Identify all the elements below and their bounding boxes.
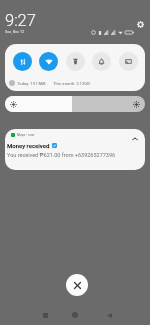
button[interactable]: Collapse notification xyxy=(130,134,140,144)
button[interactable]: Settings xyxy=(133,17,147,31)
button[interactable]: Maya • now xyxy=(5,129,145,170)
staticText: You received ₱621.00 from +639265277396 xyxy=(7,152,116,158)
staticText: This month: 3.12GB xyxy=(53,81,90,86)
staticText: Today: 151 MiB xyxy=(17,81,46,86)
button[interactable]: Screen cast xyxy=(119,52,138,71)
button[interactable]: Recents xyxy=(38,308,52,322)
button[interactable]: Flashlight xyxy=(66,52,85,71)
button[interactable]: Clear all notifications xyxy=(66,274,88,296)
button[interactable]: Do not disturb xyxy=(92,52,111,71)
button[interactable]: Mobile data xyxy=(13,52,32,71)
button[interactable]: Brightness xyxy=(5,96,145,112)
button[interactable]: Home xyxy=(68,308,82,322)
staticText: Money received xyxy=(7,142,50,149)
button[interactable]: Back xyxy=(102,308,116,322)
button[interactable]: Wi-Fi xyxy=(39,52,58,71)
staticText: Sun, Nov 12 xyxy=(5,30,24,34)
staticText: Maya • now xyxy=(17,133,35,137)
staticText: 9:27 xyxy=(5,11,36,30)
